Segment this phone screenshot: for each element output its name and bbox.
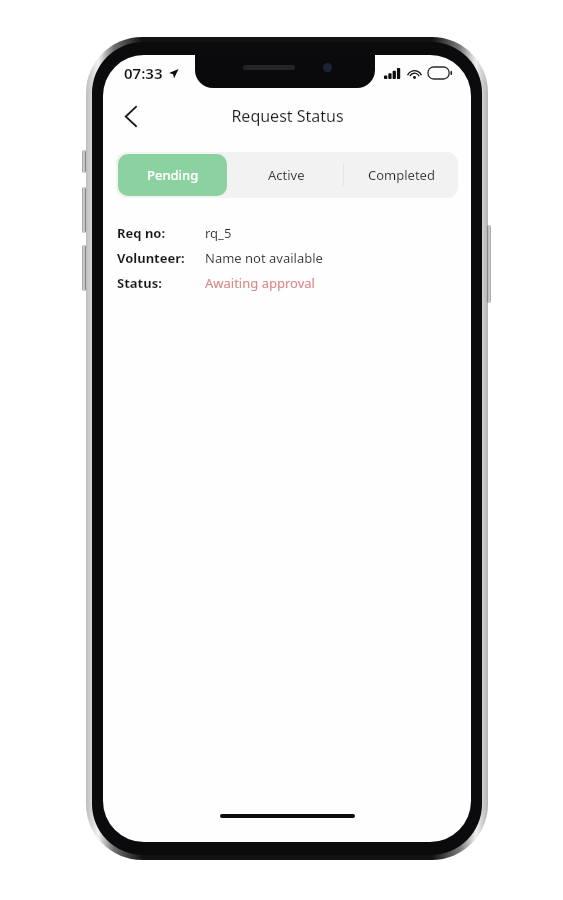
- staticText: Status:: [117, 274, 162, 292]
- button[interactable]: Pending: [118, 154, 227, 196]
- button[interactable]: Active: [229, 152, 343, 198]
- staticText: Pending: [147, 166, 199, 184]
- staticText: 07:33: [124, 63, 163, 83]
- staticText: Name not available: [205, 249, 323, 267]
- staticText: Completed: [368, 166, 435, 184]
- staticText: Volunteer:: [117, 249, 185, 267]
- button[interactable]: Completed: [344, 152, 458, 198]
- staticText: Active: [268, 166, 305, 184]
- staticText: Req no:: [117, 224, 166, 242]
- button[interactable]: Back: [111, 96, 151, 136]
- staticText: Request Status: [231, 105, 344, 127]
- staticText: rq_5: [205, 224, 232, 242]
- staticText: Awaiting approval: [205, 274, 315, 292]
